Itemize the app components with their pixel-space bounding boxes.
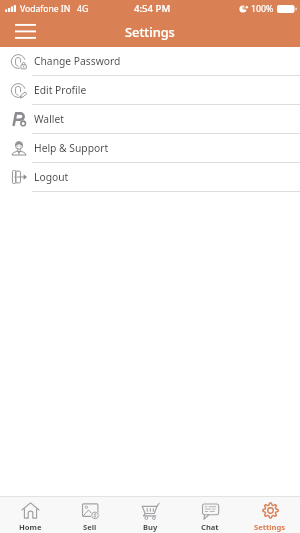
button[interactable]: Open navigation menu	[9, 19, 42, 41]
button[interactable]: Edit Profile	[0, 76, 300, 105]
staticText: Home	[19, 522, 42, 532]
button[interactable]: Logout	[0, 163, 300, 192]
button[interactable]: Change Password	[0, 47, 300, 76]
button[interactable]: Sell	[60, 497, 120, 533]
staticText: Chat	[201, 522, 219, 532]
staticText: Wallet	[34, 112, 64, 126]
button[interactable]: Buy	[120, 497, 180, 533]
staticText: Logout	[34, 170, 69, 184]
staticText: Help & Support	[34, 141, 109, 155]
staticText: Sell	[83, 522, 97, 532]
button[interactable]: Chat	[180, 497, 240, 533]
staticText: Buy	[143, 522, 158, 532]
staticText: Vodafone IN	[20, 3, 71, 15]
staticText: Settings	[254, 522, 286, 532]
button[interactable]: Help & Support	[0, 134, 300, 163]
button[interactable]: Wallet	[0, 105, 300, 134]
button[interactable]: Home	[0, 497, 60, 533]
staticText: Edit Profile	[34, 83, 87, 97]
staticText: 4G	[77, 3, 89, 15]
button[interactable]: Settings	[240, 497, 300, 533]
staticText: Settings	[125, 23, 175, 40]
staticText: 100%	[251, 3, 274, 15]
staticText: 4:54 PM	[134, 2, 171, 15]
staticText: Change Password	[34, 54, 121, 68]
